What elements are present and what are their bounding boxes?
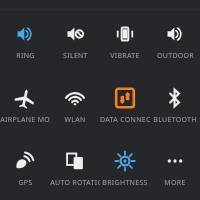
staticText: DATA CONNECTION bbox=[100, 115, 150, 125]
button[interactable]: MORE bbox=[150, 137, 200, 200]
staticText: GPS bbox=[18, 178, 33, 188]
button[interactable]: VIBRATE bbox=[100, 10, 150, 74]
button[interactable]: GPS bbox=[0, 137, 50, 200]
button[interactable]: AIRPLANE MODE bbox=[0, 74, 50, 137]
staticText: AIRPLANE MODE bbox=[0, 115, 50, 125]
button[interactable]: SILENT bbox=[50, 10, 100, 74]
button[interactable]: BRIGHTNESS bbox=[100, 137, 150, 200]
button[interactable]: DATA CONNECTION bbox=[100, 74, 150, 137]
staticText: OUTDOOR bbox=[157, 51, 194, 61]
staticText: BRIGHTNESS bbox=[102, 178, 148, 188]
staticText: WLAN bbox=[64, 115, 86, 125]
staticText: AUTO ROTATION bbox=[50, 178, 100, 188]
button[interactable]: OUTDOOR bbox=[150, 10, 200, 74]
staticText: BLUETOOTH bbox=[153, 115, 197, 125]
button[interactable]: WLAN bbox=[50, 74, 100, 137]
staticText: RING bbox=[16, 51, 35, 61]
button[interactable]: BLUETOOTH bbox=[150, 74, 200, 137]
button[interactable]: RING bbox=[0, 10, 50, 74]
staticText: SILENT bbox=[63, 51, 88, 61]
staticText: MORE bbox=[164, 178, 186, 188]
button[interactable]: AUTO ROTATION bbox=[50, 137, 100, 200]
staticText: VIBRATE bbox=[110, 51, 140, 61]
